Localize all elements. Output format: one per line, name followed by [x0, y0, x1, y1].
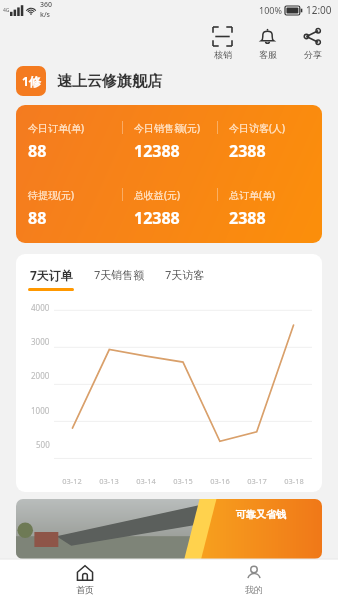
staticText: 核销	[214, 49, 232, 60]
staticText: 360	[40, 0, 53, 10]
staticText: 分享	[304, 49, 322, 60]
button[interactable]: 1修	[16, 66, 338, 96]
staticText: 1000	[31, 405, 50, 421]
staticText: 我的	[245, 584, 263, 595]
staticText: 2388	[229, 140, 266, 162]
staticText: 7天访客	[165, 267, 205, 282]
button[interactable]: 7天销售额	[94, 267, 145, 290]
staticText: 总订单(单)	[229, 188, 275, 202]
staticText: 12388	[134, 140, 180, 162]
staticText: k/s	[40, 10, 51, 20]
staticText: 7天销售额	[94, 267, 145, 282]
staticText: 7天订单	[30, 267, 73, 283]
staticText: 88	[28, 207, 47, 229]
staticText: 今日访客(人)	[229, 121, 285, 135]
button[interactable]: 可靠又省钱	[16, 499, 322, 559]
button[interactable]: 今日订单(单)	[16, 105, 322, 243]
staticText: 03-13	[99, 476, 119, 486]
staticText: 88	[28, 140, 47, 162]
staticText: 3000	[31, 336, 50, 352]
button[interactable]: 核销	[211, 26, 234, 61]
staticText: 12:00	[306, 3, 332, 17]
staticText: 03-12	[62, 476, 82, 486]
staticText: 03-18	[284, 476, 304, 486]
staticText: 03-15	[173, 476, 193, 486]
staticText: 100%	[259, 4, 282, 16]
button[interactable]: 分享	[301, 26, 324, 61]
staticText: 03-14	[136, 476, 156, 486]
staticText: 4000	[31, 302, 50, 318]
staticText: 可靠又省钱	[236, 508, 286, 521]
staticText: 1修	[22, 73, 41, 89]
staticText: 4G	[3, 7, 10, 14]
staticText: 今日订单(单)	[28, 121, 84, 135]
staticText: 速上云修旗舰店	[57, 72, 162, 91]
staticText: 今日销售额(元)	[134, 121, 200, 135]
staticText: 2388	[229, 207, 266, 229]
staticText: 500	[36, 439, 50, 455]
staticText: 03-16	[210, 476, 230, 486]
staticText: 首页	[76, 584, 94, 595]
staticText: 客服	[259, 49, 277, 60]
button[interactable]: 客服	[256, 26, 279, 61]
staticText: 总收益(元)	[134, 188, 180, 202]
staticText: 12388	[134, 207, 180, 229]
button[interactable]: 我的	[169, 559, 338, 600]
button[interactable]: 7天订单	[28, 267, 74, 291]
staticText: 2000	[31, 370, 50, 386]
staticText: 03-17	[247, 476, 267, 486]
button[interactable]: 首页	[0, 559, 169, 600]
staticText: 待提现(元)	[28, 188, 74, 202]
button[interactable]: 7天访客	[165, 267, 205, 290]
